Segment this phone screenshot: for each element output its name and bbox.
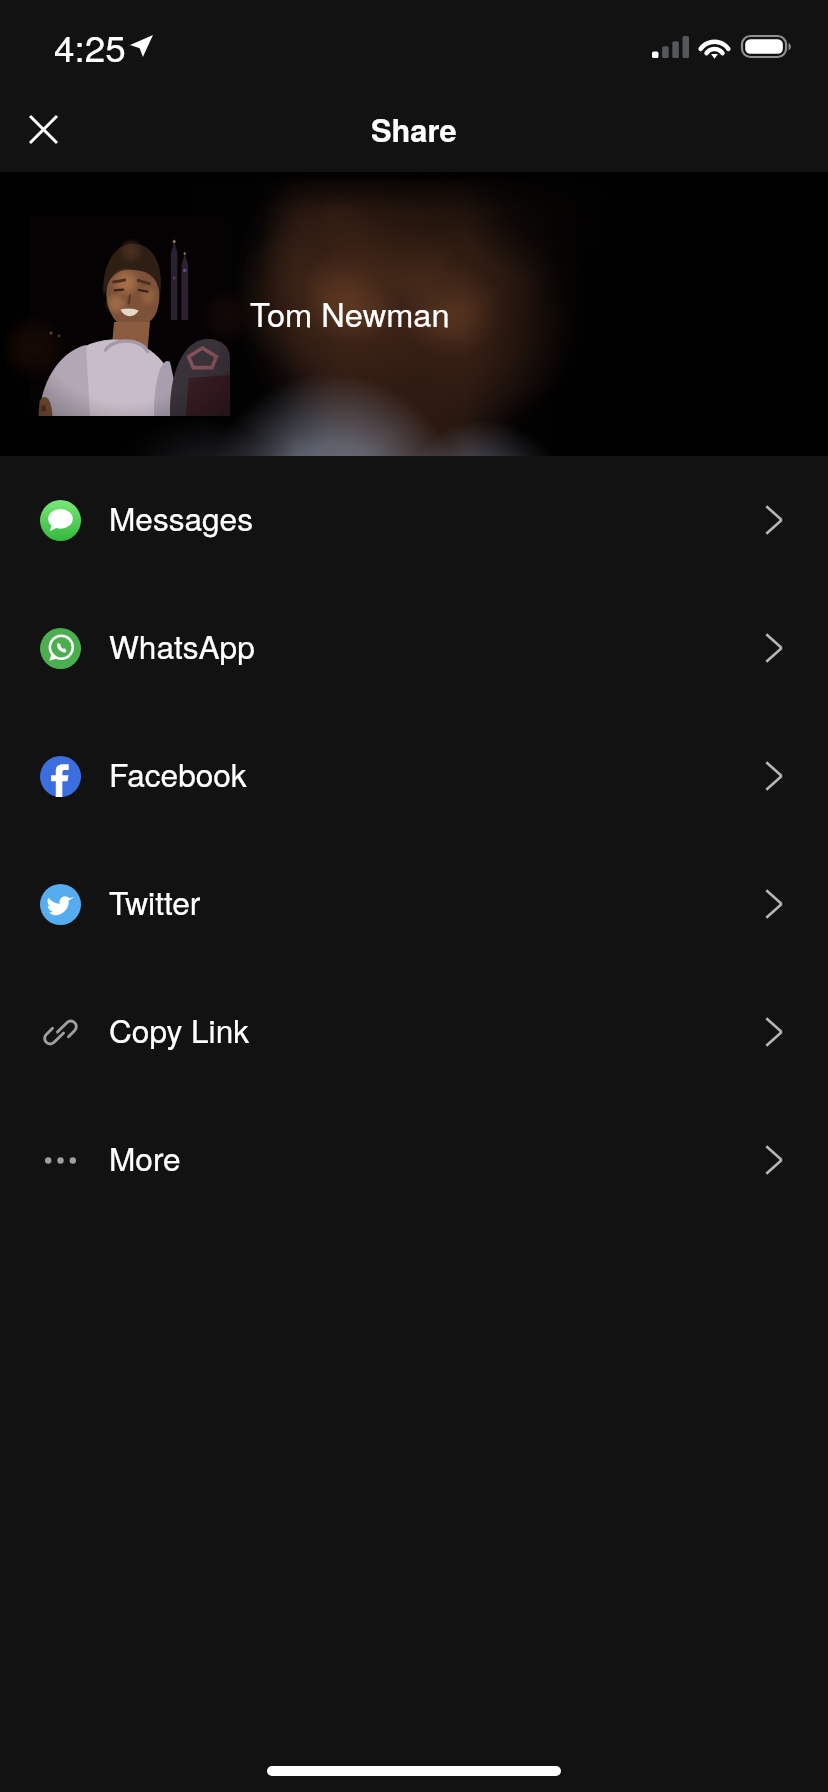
button[interactable]: More: [0, 1096, 828, 1224]
button[interactable]: Close: [0, 86, 87, 172]
button[interactable]: WhatsApp: [0, 584, 828, 712]
staticText: Twitter: [109, 879, 201, 924]
staticText: WhatsApp: [109, 623, 255, 668]
button[interactable]: Facebook: [0, 712, 828, 840]
button[interactable]: Messages: [0, 456, 828, 584]
staticText: 4:25: [54, 20, 126, 73]
button[interactable]: Copy Link: [0, 968, 828, 1096]
staticText: Share: [371, 107, 457, 151]
staticText: Messages: [109, 495, 253, 540]
staticText: Facebook: [109, 751, 247, 796]
staticText: Tom Newman: [250, 290, 450, 337]
button[interactable]: Twitter: [0, 840, 828, 968]
staticText: More: [109, 1135, 181, 1180]
staticText: Copy Link: [109, 1007, 249, 1052]
